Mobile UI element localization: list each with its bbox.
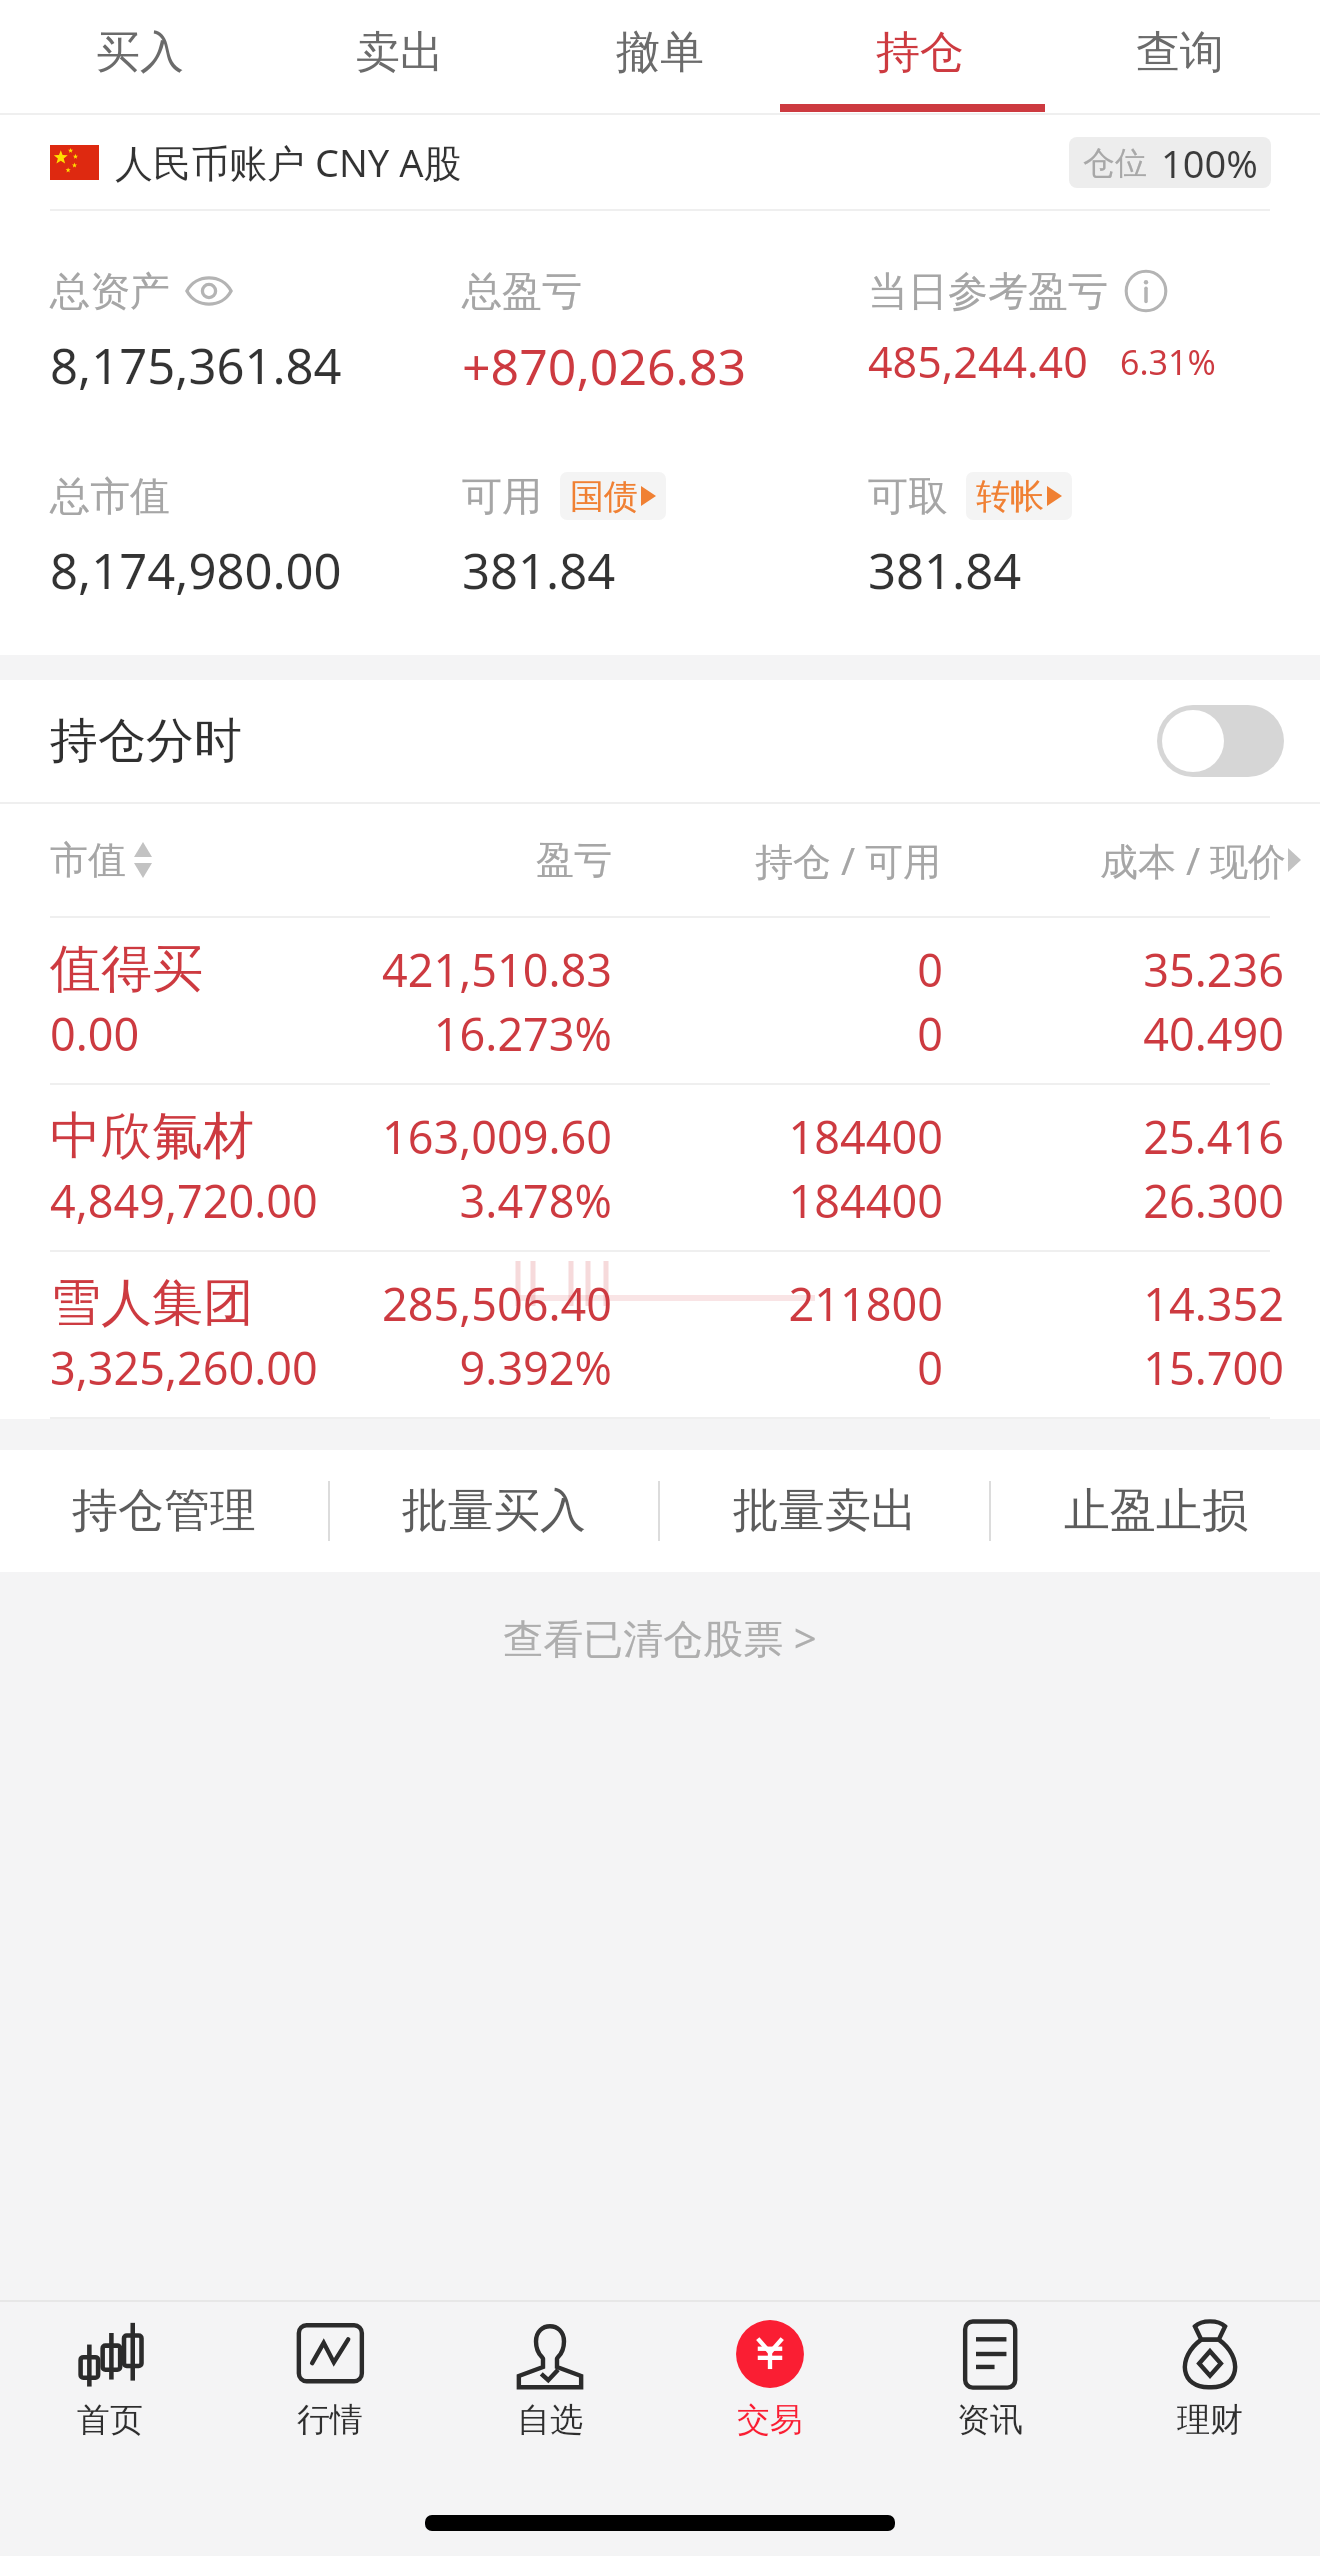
staticText: 485,244.40 (868, 332, 1088, 391)
staticText: 40.490 (943, 1003, 1284, 1064)
button[interactable]: Info (1124, 269, 1168, 313)
staticText: 15.700 (943, 1337, 1284, 1398)
staticText: 买入 (96, 25, 184, 80)
staticText: 卖出 (356, 25, 444, 80)
button[interactable]: Hide balance (186, 276, 232, 306)
staticText: 批量买入 (402, 1482, 586, 1540)
staticText: 首页 (77, 2399, 143, 2441)
staticText: 成本 / 现价 (1100, 834, 1286, 886)
staticText: 交易 (737, 2399, 803, 2441)
button[interactable]: 批量卖出 (660, 1450, 989, 1572)
button[interactable]: 持仓 (790, 0, 1050, 113)
staticText: 雪人集团 (50, 1271, 326, 1335)
button[interactable]: 中欣氟材 (0, 1085, 1320, 1250)
staticText: 查询 (1136, 25, 1224, 80)
staticText: 163,009.60 (326, 1106, 612, 1167)
staticText: 持仓 / 可用 (612, 834, 941, 886)
button[interactable]: 雪人集团 (0, 1252, 1320, 1417)
staticText: 人民币账户 CNY A股 (115, 136, 462, 188)
staticText: 市值 (50, 836, 126, 884)
button[interactable]: Markets (220, 2319, 440, 2441)
staticText: 8,175,361.84 (50, 332, 342, 399)
staticText: 行情 (297, 2399, 363, 2441)
button[interactable]: Toggle intraday chart (1157, 705, 1284, 777)
staticText: 理财 (1177, 2399, 1243, 2441)
staticText: 184400 (612, 1106, 943, 1167)
staticText: 中欣氟材 (50, 1104, 326, 1168)
staticText: 6.31% (1120, 339, 1216, 385)
staticText: +870,026.83 (462, 332, 747, 400)
button[interactable]: Watchlist (440, 2319, 660, 2441)
staticText: 仓位 (1083, 143, 1147, 183)
staticText: 自选 (517, 2399, 583, 2441)
button[interactable]: 国债 (560, 472, 666, 520)
staticText: 可取 (868, 471, 948, 521)
button[interactable]: 转帐 (966, 472, 1072, 520)
button[interactable]: 撤单 (530, 0, 790, 113)
staticText: 14.352 (943, 1273, 1284, 1334)
button[interactable]: 查看已清仓股票 > (0, 1610, 1320, 1665)
staticText: 3,325,260.00 (50, 1337, 326, 1398)
staticText: 8,174,980.00 (50, 537, 342, 604)
staticText: 盈亏 (326, 836, 612, 884)
button[interactable]: 人民币账户 CNY A股 (0, 115, 1320, 209)
staticText: 3.478% (326, 1170, 612, 1231)
staticText: 0 (612, 1003, 943, 1064)
staticText: 转帐 (976, 475, 1044, 518)
staticText: 184400 (612, 1170, 943, 1231)
staticText: 9.392% (326, 1337, 612, 1398)
staticText: 381.84 (462, 537, 616, 604)
button[interactable]: 止盈止损 (991, 1450, 1320, 1572)
staticText: 100% (1161, 137, 1258, 188)
staticText: 35.236 (943, 939, 1284, 1000)
staticText: 总盈亏 (462, 266, 582, 316)
button[interactable]: 批量买入 (330, 1450, 658, 1572)
staticText: 0.00 (50, 1003, 326, 1064)
staticText: 值得买 (50, 937, 326, 1001)
staticText: 持仓 (876, 25, 964, 80)
staticText: 资讯 (957, 2399, 1023, 2441)
button[interactable]: 持仓管理 (0, 1450, 328, 1572)
staticText: 总资产 (50, 266, 170, 316)
staticText: 撤单 (616, 25, 704, 80)
staticText: 26.300 (943, 1170, 1284, 1231)
staticText: 16.273% (326, 1003, 612, 1064)
button[interactable]: Wealth (1100, 2319, 1320, 2441)
staticText: 止盈止损 (1064, 1482, 1248, 1540)
staticText: 381.84 (868, 537, 1022, 604)
staticText: 可用 (462, 471, 542, 521)
button[interactable]: 仓位 (1069, 137, 1271, 188)
staticText: 4,849,720.00 (50, 1170, 326, 1231)
staticText: 211800 (612, 1273, 943, 1334)
staticText: 国债 (570, 475, 638, 518)
button[interactable]: 查询 (1050, 0, 1310, 113)
button[interactable]: 买入 (10, 0, 270, 113)
button[interactable]: News (880, 2319, 1100, 2441)
button[interactable]: Trade (660, 2319, 880, 2441)
staticText: 持仓分时 (50, 711, 242, 771)
staticText: 总市值 (50, 471, 170, 521)
staticText: 0 (612, 939, 943, 1000)
button[interactable]: 值得买 (0, 918, 1320, 1083)
staticText: 批量卖出 (733, 1482, 917, 1540)
staticText: 0 (612, 1337, 943, 1398)
staticText: 持仓管理 (72, 1482, 256, 1540)
staticText: 25.416 (943, 1106, 1284, 1167)
staticText: 当日参考盈亏 (868, 266, 1108, 316)
button[interactable]: Home (0, 2319, 220, 2441)
staticText: 285,506.40 (326, 1273, 612, 1334)
button[interactable]: 卖出 (270, 0, 530, 113)
staticText: 421,510.83 (326, 939, 612, 1000)
